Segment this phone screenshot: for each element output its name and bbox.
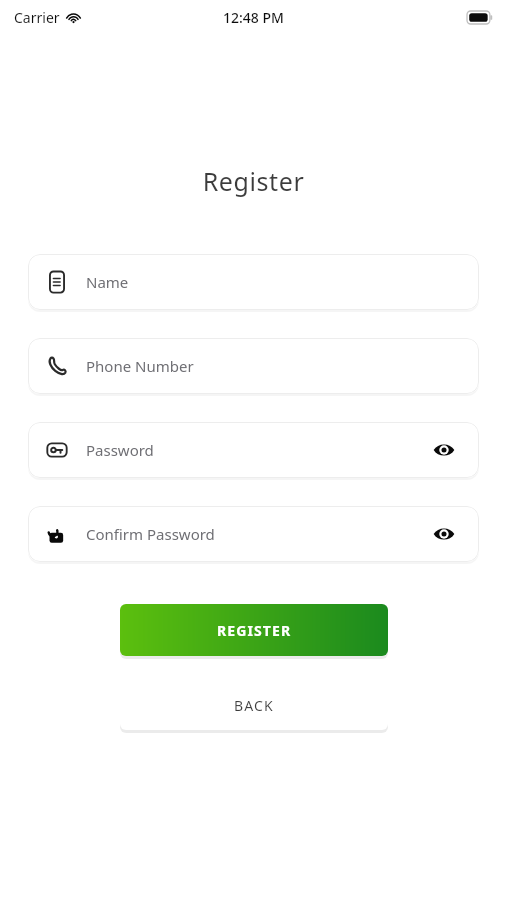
button[interactable]: Password bbox=[28, 422, 479, 478]
staticText: BACK bbox=[234, 696, 274, 715]
staticText: Password bbox=[86, 440, 427, 460]
button[interactable]: REGISTER bbox=[120, 604, 388, 656]
staticText: Confirm Password bbox=[86, 524, 427, 544]
staticText: Name bbox=[86, 272, 461, 292]
staticText: 12:48 PM bbox=[223, 8, 284, 27]
staticText: REGISTER bbox=[217, 621, 292, 640]
button[interactable]: Show password bbox=[427, 433, 461, 467]
staticText: Phone Number bbox=[86, 356, 461, 376]
button[interactable]: Show password bbox=[427, 517, 461, 551]
staticText: Register bbox=[0, 164, 507, 198]
button[interactable]: BACK bbox=[120, 680, 388, 730]
button[interactable]: Phone Number bbox=[28, 338, 479, 394]
button[interactable]: Confirm Password bbox=[28, 506, 479, 562]
staticText: Carrier bbox=[14, 8, 60, 27]
button[interactable]: Name bbox=[28, 254, 479, 310]
